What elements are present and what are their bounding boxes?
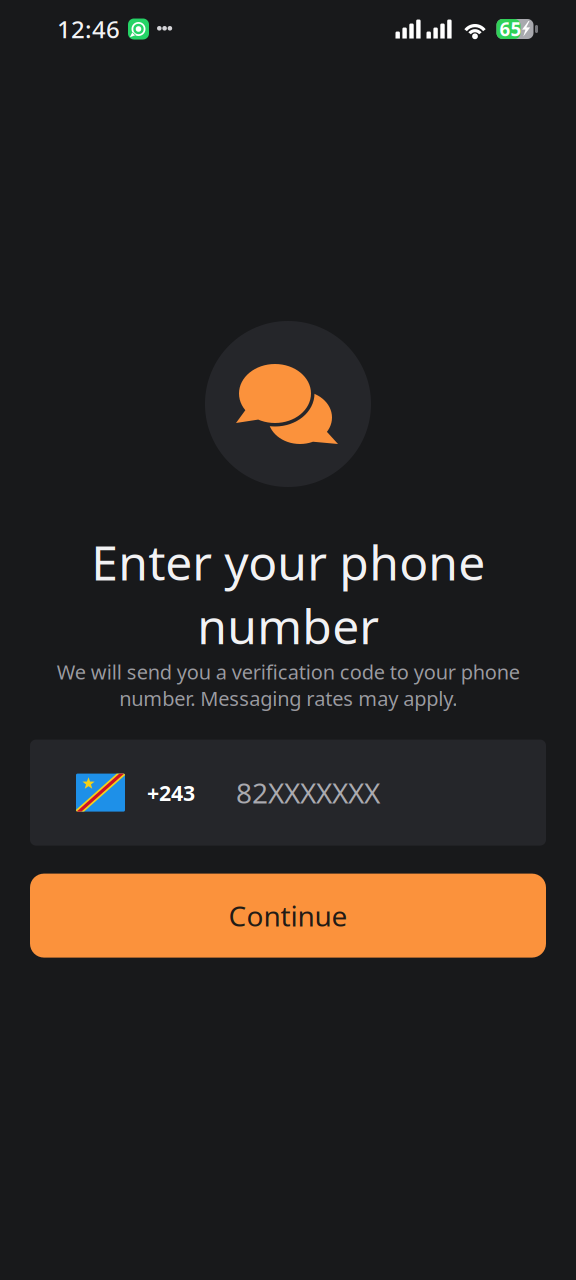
staticText: Enter your phone number	[91, 530, 485, 657]
staticText: +243	[147, 778, 195, 807]
staticText: Continue	[228, 897, 347, 934]
staticText: 65	[499, 17, 521, 41]
button[interactable]: +243	[30, 740, 546, 846]
staticText: 12:46	[57, 13, 120, 45]
button[interactable]: Continue	[30, 874, 546, 958]
staticText: 82XXXXXXX	[236, 774, 380, 811]
staticText: We will send you a verification code to …	[56, 658, 519, 712]
